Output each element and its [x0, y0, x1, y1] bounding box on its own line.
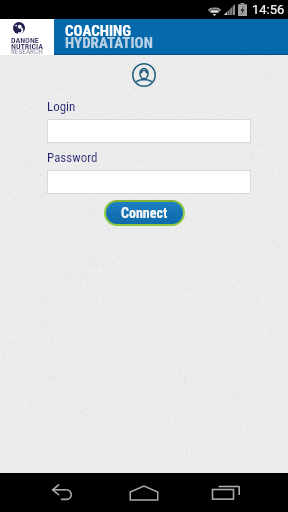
staticText: 14:56: [252, 2, 285, 17]
staticText: Connect: [121, 205, 168, 221]
button[interactable]: Recent apps: [200, 473, 252, 512]
staticText: Password: [47, 150, 98, 165]
staticText: Login: [47, 99, 76, 114]
staticText: DANONE NUTRICIA RESEARCH: [11, 36, 43, 55]
button[interactable]: [47, 119, 251, 143]
button[interactable]: Profile: [132, 63, 156, 87]
staticText: COACHING HYDRATATION: [65, 22, 153, 51]
button[interactable]: Connect: [106, 202, 183, 224]
button[interactable]: Back: [38, 473, 90, 512]
button[interactable]: Home: [118, 473, 170, 512]
button[interactable]: [47, 170, 251, 194]
